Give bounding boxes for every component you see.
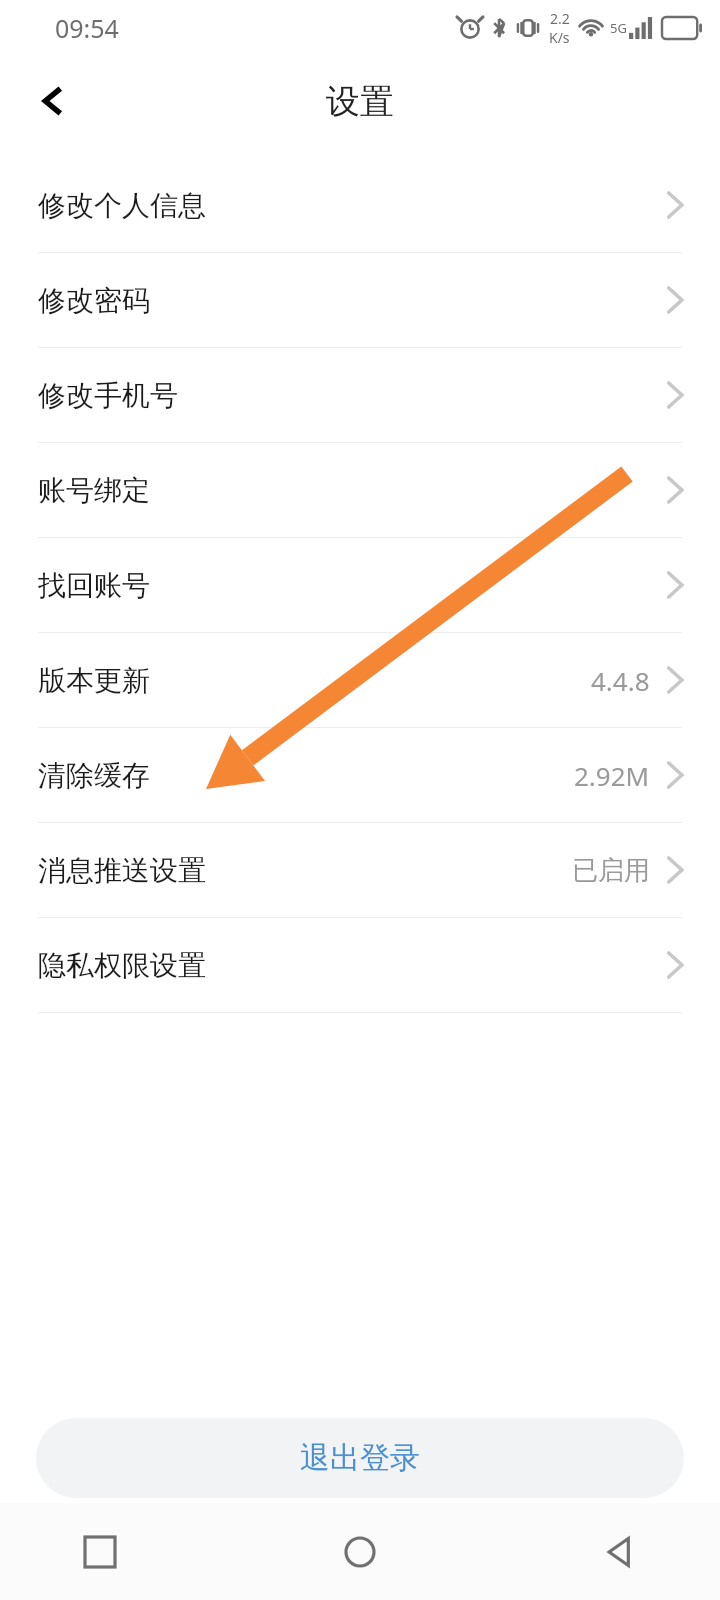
staticText: 设置 (326, 80, 394, 123)
staticText: 修改密码 (38, 283, 150, 318)
staticText: 修改个人信息 (38, 188, 206, 223)
staticText: 5G (610, 19, 627, 37)
button[interactable]: Back (22, 71, 82, 131)
button[interactable]: 版本更新 (0, 633, 720, 728)
staticText: 隐私权限设置 (38, 948, 206, 983)
button[interactable]: 修改个人信息 (0, 158, 720, 253)
button[interactable]: 清除缓存 (0, 728, 720, 823)
button[interactable]: Home (320, 1512, 400, 1592)
button[interactable]: 账号绑定 (0, 443, 720, 538)
staticText: 消息推送设置 (38, 853, 206, 888)
button[interactable]: 退出登录 (36, 1418, 684, 1498)
staticText: 2.2 (550, 9, 570, 28)
button[interactable]: 找回账号 (0, 538, 720, 633)
button[interactable]: Back (580, 1512, 660, 1592)
button[interactable]: 修改手机号 (0, 348, 720, 443)
staticText: 版本更新 (38, 663, 150, 698)
staticText: 找回账号 (38, 568, 150, 603)
staticText: 账号绑定 (38, 473, 150, 508)
staticText: 修改手机号 (38, 378, 178, 413)
staticText: 4.4.8 (591, 663, 650, 698)
button[interactable]: Recent apps (60, 1512, 140, 1592)
button[interactable]: 修改密码 (0, 253, 720, 348)
button[interactable]: 消息推送设置 (0, 823, 720, 918)
staticText: 退出登录 (300, 1439, 420, 1477)
staticText: 2.92M (574, 758, 650, 793)
staticText: 已启用 (572, 854, 650, 887)
staticText: 09:54 (55, 11, 119, 45)
button[interactable]: 隐私权限设置 (0, 918, 720, 1013)
staticText: 清除缓存 (38, 758, 150, 793)
staticText: K/s (549, 28, 570, 47)
